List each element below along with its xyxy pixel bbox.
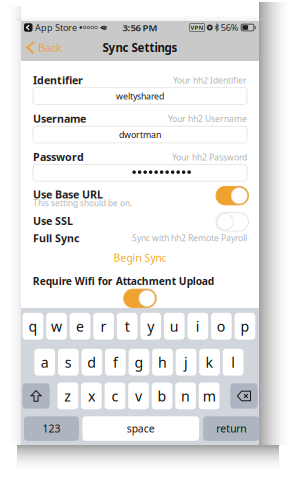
button[interactable]: Switch, on [124,289,156,308]
staticText: 123 [42,422,60,435]
staticText: Begin Sync [113,251,166,264]
button[interactable]: t [117,313,137,340]
button[interactable]: Shift [22,383,50,409]
staticText: v [135,386,142,405]
staticText: Back [38,40,62,55]
staticText: f [113,353,118,372]
button[interactable]: Delete [230,383,258,409]
button[interactable]: o [211,313,232,340]
staticText: weltyshared [116,90,164,102]
staticText: e [76,317,84,336]
staticText: Your hh2 Identifier [173,75,247,86]
staticText: j [184,353,188,372]
staticText: c [111,386,118,405]
staticText: l [231,353,235,372]
button[interactable]: r [93,313,114,340]
staticText: z [64,386,71,405]
button[interactable]: p [235,313,255,340]
button[interactable]: s [58,349,79,376]
button[interactable]: m [199,382,219,409]
staticText: i [196,317,200,336]
staticText: n [181,386,190,405]
staticText: Identifier [33,73,83,87]
button[interactable]: y [140,313,161,340]
button[interactable]: k [199,349,220,376]
staticText: return [216,422,246,435]
staticText: This setting should be on. [33,198,132,208]
staticText: Require Wifi for Attachment Upload [33,274,214,288]
button[interactable]: Back [21,34,68,61]
staticText: s [65,353,72,372]
button[interactable]: h [152,349,173,376]
button[interactable]: e [70,313,90,340]
staticText: y [147,317,154,336]
staticText: Username [33,111,86,126]
staticText: a [41,353,49,372]
button[interactable]: i [187,313,208,340]
button[interactable]: z [57,382,78,409]
staticText: 56% [221,21,239,33]
button[interactable]: j [176,349,196,376]
staticText: k [206,353,214,372]
staticText: 3:56 PM [122,21,157,34]
staticText: q [28,317,37,336]
staticText: u [170,317,179,336]
button[interactable]: x [81,382,102,409]
staticText: App Store [35,21,77,33]
button[interactable]: space [82,416,199,441]
staticText: p [240,317,249,336]
button[interactable]: b [152,382,172,409]
staticText: Use SSL [33,214,73,228]
staticText: t [125,317,130,336]
button[interactable]: u [164,313,185,340]
button[interactable]: Begin Sync [21,251,259,264]
button[interactable]: Switch, on [216,186,248,205]
staticText: h [158,353,167,372]
staticText: Use Base URL [33,187,103,202]
button[interactable]: v [128,382,149,409]
staticText: Password [33,150,84,164]
staticText: r [101,317,107,336]
button[interactable]: q [23,313,43,340]
button[interactable]: g [129,349,149,376]
button[interactable]: n [175,382,196,409]
staticText: b [157,386,166,405]
button[interactable]: 123 [24,416,79,441]
staticText: x [88,386,95,405]
staticText: VPN [191,24,204,31]
button[interactable]: return [203,416,259,441]
staticText: d [87,353,96,372]
button[interactable]: Switch, off [216,212,248,231]
button[interactable]: f [105,349,126,376]
staticText: dwortman [119,129,161,140]
staticText: g [134,353,143,372]
staticText: Your hh2 Username [168,113,247,124]
button[interactable]: a [34,349,55,376]
staticText: w [51,317,62,336]
button[interactable]: d [81,349,102,376]
staticText: Full Sync [33,231,80,245]
button[interactable]: l [223,349,243,376]
staticText: Sync with hh2 Remote Payroll [132,232,247,243]
staticText: Sync Settings [102,40,177,55]
staticText: o [217,317,226,336]
staticText: m [203,386,216,405]
staticText: Your hh2 Password [172,151,247,163]
button[interactable]: c [105,382,125,409]
button[interactable]: w [46,313,67,340]
staticText: space [127,422,155,435]
